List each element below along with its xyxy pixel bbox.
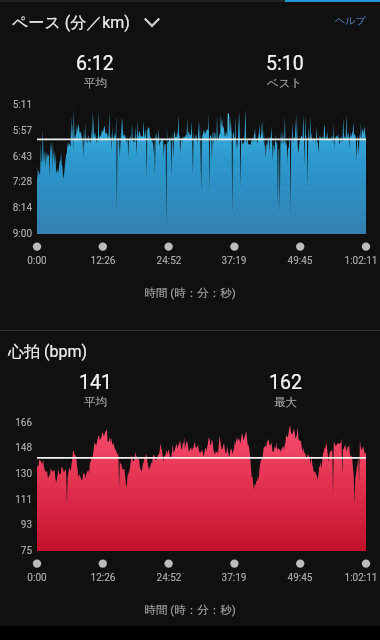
staticText: 5:11 xyxy=(1,99,32,111)
staticText: 平均 xyxy=(84,395,107,409)
staticText: 49:45 xyxy=(270,572,330,584)
staticText: 1:02:11 xyxy=(331,572,380,584)
staticText: 7:28 xyxy=(1,176,32,188)
staticText: 時間 (時：分：秒) xyxy=(6,603,374,617)
staticText: 5:10 xyxy=(266,52,304,75)
button[interactable]: 心拍 (bpm) xyxy=(8,342,88,362)
staticText: 12:26 xyxy=(73,572,133,584)
staticText: 5:57 xyxy=(1,125,32,137)
staticText: 0:00 xyxy=(7,572,67,584)
staticText: 130 xyxy=(1,468,32,480)
staticText: 1:02:11 xyxy=(331,255,380,267)
staticText: 時間 (時：分：秒) xyxy=(6,286,374,300)
staticText: ヘルプ xyxy=(335,14,366,27)
staticText: 8:14 xyxy=(1,202,32,214)
staticText: 93 xyxy=(1,519,32,531)
staticText: 148 xyxy=(1,442,32,454)
staticText: 24:52 xyxy=(139,255,199,267)
staticText: ペース (分／km) xyxy=(12,13,130,33)
staticText: 平均 xyxy=(84,76,107,90)
button[interactable]: Change metric xyxy=(139,9,164,34)
staticText: 6:43 xyxy=(1,151,32,163)
staticText: 37:19 xyxy=(204,255,264,267)
button[interactable]: ペース (分／km) xyxy=(12,13,130,33)
staticText: 162 xyxy=(269,371,302,394)
staticText: 75 xyxy=(1,545,32,557)
staticText: 0:00 xyxy=(7,255,67,267)
staticText: 49:45 xyxy=(270,255,330,267)
staticText: 12:26 xyxy=(73,255,133,267)
staticText: ベスト xyxy=(267,76,303,90)
staticText: 6:12 xyxy=(76,52,114,75)
staticText: 111 xyxy=(1,494,32,506)
staticText: 心拍 (bpm) xyxy=(8,342,88,362)
staticText: 37:19 xyxy=(204,572,264,584)
staticText: 9:00 xyxy=(1,228,32,240)
staticText: 141 xyxy=(79,371,112,394)
button[interactable]: ヘルプ xyxy=(328,10,372,30)
staticText: 166 xyxy=(1,417,32,429)
staticText: 24:52 xyxy=(139,572,199,584)
staticText: 最大 xyxy=(274,395,297,409)
